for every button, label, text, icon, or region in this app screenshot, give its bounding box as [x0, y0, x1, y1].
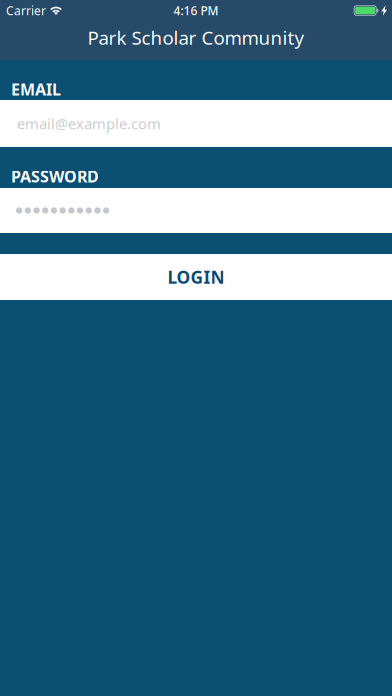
button[interactable]: LOGIN [0, 254, 392, 300]
staticText: EMAIL [11, 79, 61, 100]
staticText: Park Scholar Community [87, 25, 304, 50]
staticText: PASSWORD [11, 166, 99, 187]
staticText: 4:16 PM [173, 2, 218, 18]
staticText: email@example.com [17, 114, 161, 133]
button[interactable]: email@example.com [0, 100, 392, 147]
staticText: LOGIN [167, 265, 224, 288]
staticText: Carrier [6, 2, 46, 18]
button[interactable]: Password [0, 188, 392, 233]
